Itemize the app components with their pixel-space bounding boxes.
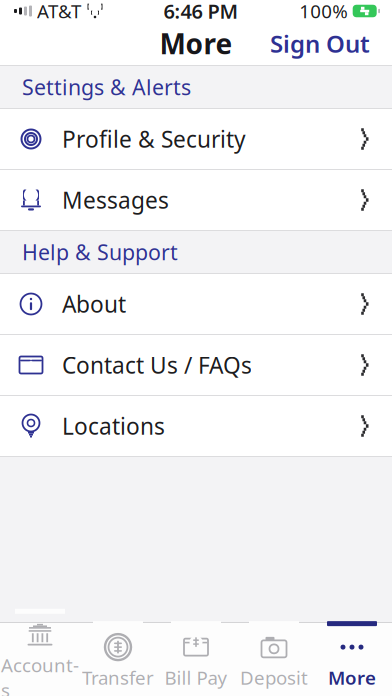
- staticText: More: [159, 25, 232, 62]
- button[interactable]: Sign Out: [258, 20, 382, 67]
- button[interactable]: Profile & Security: [0, 109, 392, 170]
- staticText: Accounts: [1, 653, 79, 696]
- staticText: Messages: [62, 185, 169, 215]
- staticText: Contact Us / FAQs: [62, 350, 252, 380]
- button[interactable]: Deposit: [235, 622, 313, 696]
- staticText: AT&T: [37, 0, 81, 23]
- staticText: Settings & Alerts: [22, 73, 191, 101]
- staticText: Transfer: [82, 665, 154, 690]
- staticText: Help & Support: [22, 238, 178, 266]
- button[interactable]: Locations: [0, 396, 392, 457]
- staticText: Profile & Security: [62, 124, 246, 154]
- staticText: 100%: [299, 0, 348, 23]
- button[interactable]: More: [313, 622, 391, 696]
- staticText: About: [62, 289, 126, 319]
- staticText: 6:46 PM: [164, 0, 239, 24]
- button[interactable]: Transfer: [79, 622, 157, 696]
- button[interactable]: About: [0, 274, 392, 335]
- staticText: Locations: [62, 411, 165, 441]
- staticText: More: [328, 665, 376, 690]
- button[interactable]: Contact Us / FAQs: [0, 335, 392, 396]
- staticText: Sign Out: [270, 28, 370, 59]
- button[interactable]: Accounts: [1, 622, 79, 696]
- button[interactable]: Bill Pay: [157, 622, 235, 696]
- button[interactable]: Messages: [0, 170, 392, 231]
- staticText: Deposit: [240, 665, 308, 690]
- staticText: Bill Pay: [164, 665, 227, 690]
